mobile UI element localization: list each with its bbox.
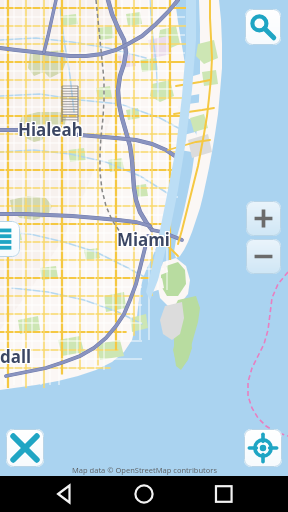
button[interactable]: Hialeah	[0, 0, 288, 476]
button[interactable]: Map layers	[0, 221, 20, 257]
staticText: Hialeah	[19, 119, 84, 142]
staticText: dall	[0, 344, 32, 367]
staticText: Hialeah	[17, 119, 82, 142]
button[interactable]: My location	[244, 429, 282, 467]
staticText: Map data © OpenStreetMap contributors	[72, 465, 217, 475]
staticText: Miami	[117, 229, 170, 252]
staticText: Miami	[118, 229, 171, 252]
staticText: Miami	[118, 227, 171, 250]
staticText: dall	[1, 344, 33, 367]
staticText: dall	[0, 345, 32, 368]
staticText: Miami	[116, 227, 169, 250]
staticText: Hialeah	[18, 119, 83, 142]
button[interactable]: Search	[245, 9, 281, 45]
staticText: dall	[1, 346, 33, 369]
staticText: dall	[0, 345, 31, 368]
staticText: Hialeah	[19, 117, 84, 140]
button[interactable]: Back	[48, 476, 288, 512]
staticText: Miami	[118, 228, 171, 251]
staticText: dall	[1, 345, 33, 368]
button[interactable]: Zoom in	[246, 201, 281, 236]
staticText: Hialeah	[19, 118, 84, 141]
staticText: Miami	[117, 227, 170, 250]
staticText: Hialeah	[18, 118, 83, 141]
button[interactable]: Zoom out	[246, 239, 281, 274]
staticText: Hialeah	[17, 118, 82, 141]
button[interactable]: Clear	[6, 429, 44, 467]
staticText: Miami	[117, 228, 170, 251]
staticText: dall	[0, 346, 32, 369]
staticText: Hialeah	[17, 117, 82, 140]
staticText: Miami	[116, 229, 169, 252]
staticText: Miami	[116, 228, 169, 251]
staticText: Hialeah	[18, 117, 83, 140]
staticText: dall	[0, 346, 31, 369]
staticText: dall	[0, 344, 31, 367]
